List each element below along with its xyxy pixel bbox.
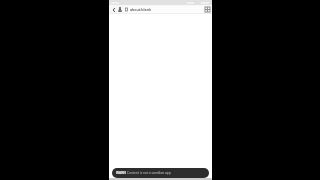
button[interactable]: Back <box>111 7 116 12</box>
staticText: Content is not a sandbox app <box>127 171 171 175</box>
button[interactable]: Home <box>117 7 122 12</box>
button[interactable]: about:blank <box>124 6 203 13</box>
button[interactable]: Tabs <box>204 6 211 13</box>
staticText: about:blank <box>130 7 152 12</box>
staticText: WARN <box>116 171 126 175</box>
button[interactable]: WARN <box>112 168 209 178</box>
